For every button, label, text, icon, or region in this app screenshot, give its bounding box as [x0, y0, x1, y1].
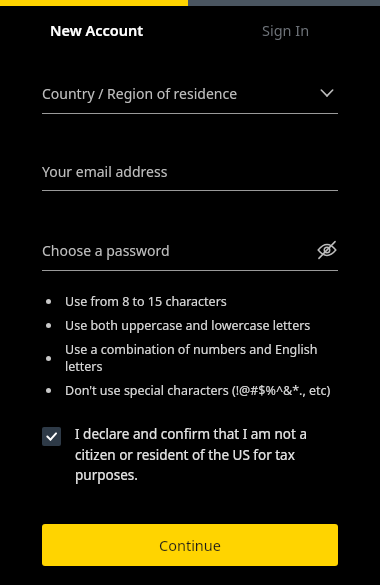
staticText: Sign In [262, 20, 310, 40]
staticText: New Account [50, 20, 144, 40]
other: Select country or region [316, 82, 338, 104]
staticText: Continue [159, 535, 221, 555]
button[interactable]: Country / Region of residence [42, 82, 338, 104]
staticText: Your email address [42, 162, 168, 181]
button[interactable]: Choose a password [42, 239, 338, 261]
staticText: Choose a password [42, 241, 170, 260]
button[interactable]: Sign In [250, 14, 322, 46]
staticText: Don't use special characters (!@#$%^&*.,… [65, 382, 331, 399]
staticText: Use from 8 to 15 characters [65, 293, 227, 310]
button[interactable]: I declare and confirm that I am not a ci… [42, 425, 338, 484]
staticText: Country / Region of residence [42, 84, 238, 103]
staticText: Use a combination of numbers and English… [65, 341, 338, 375]
button[interactable]: New Account [38, 14, 156, 46]
staticText: Use both uppercase and lowercase letters [65, 317, 311, 334]
staticText: I declare and confirm that I am not a ci… [75, 425, 338, 484]
other: Show password [316, 239, 338, 261]
button[interactable]: Continue [42, 524, 338, 566]
button[interactable]: Your email address [42, 162, 338, 181]
